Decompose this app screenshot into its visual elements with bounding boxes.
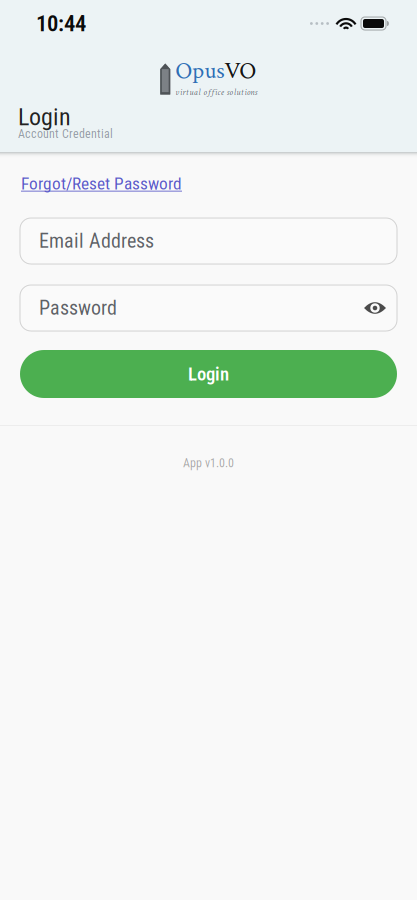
staticText: Password [39,296,117,320]
staticText: App v1.0.0 [183,456,234,470]
staticText: virtual office solutions [175,86,257,98]
staticText: Login [188,363,229,385]
staticText: Email Address [39,229,154,253]
staticText: Forgot/Reset Password [21,173,182,194]
staticText: Opus [175,55,224,86]
staticText: 10:44 [36,10,86,37]
staticText: Account Credential [18,127,113,141]
staticText: VO [224,55,256,86]
staticText: Login [18,103,71,131]
button[interactable]: Login [20,350,397,398]
button[interactable]: Show password [360,291,390,325]
button[interactable]: Forgot/Reset Password [21,175,182,192]
